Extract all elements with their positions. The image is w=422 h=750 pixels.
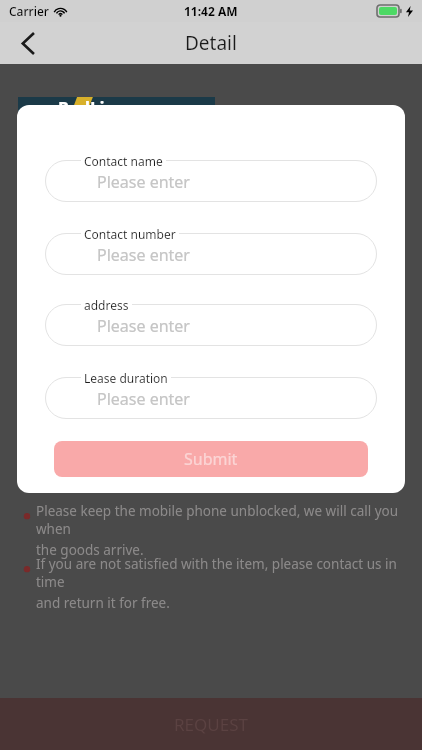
- staticText: Contact name: [84, 153, 163, 169]
- button[interactable]: Submit: [54, 441, 368, 477]
- staticText: Detail: [185, 30, 237, 56]
- button[interactable]: [45, 304, 377, 346]
- staticText: the goods arrive.: [36, 541, 144, 559]
- button[interactable]: [45, 377, 377, 419]
- staticText: Please enter: [97, 171, 190, 193]
- staticText: Please enter: [97, 244, 190, 266]
- staticText: REQUEST: [174, 713, 248, 736]
- staticText: Please keep the mobile phone unblocked, …: [36, 502, 404, 538]
- staticText: RedLine: [58, 97, 126, 120]
- staticText: Contact number: [84, 226, 176, 242]
- button[interactable]: [45, 233, 377, 275]
- staticText: and return it for free.: [36, 594, 170, 612]
- staticText: Please enter: [97, 388, 190, 410]
- staticText: Please enter: [97, 315, 190, 337]
- staticText: If you are not satisfied with the item, …: [36, 555, 404, 591]
- staticText: address: [84, 297, 129, 313]
- staticText: 11:42 AM: [184, 3, 238, 19]
- staticText: Carrier: [9, 3, 49, 19]
- staticText: Submit: [184, 448, 238, 470]
- button[interactable]: Back: [8, 23, 48, 63]
- staticText: Lease duration: [84, 370, 168, 386]
- button[interactable]: [45, 160, 377, 202]
